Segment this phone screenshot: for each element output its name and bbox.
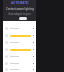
button[interactable] — [3, 67, 36, 72]
button[interactable] — [3, 25, 36, 32]
staticText: Context-aware lighting — [6, 7, 34, 11]
button[interactable] — [3, 39, 36, 46]
button[interactable] — [3, 46, 36, 53]
button[interactable] — [3, 53, 36, 60]
staticText: that adapts to you — [8, 12, 31, 16]
button[interactable] — [3, 32, 36, 39]
button[interactable]: Get started — [19, 17, 27, 20]
button[interactable] — [3, 60, 36, 67]
staticText: AUTOMATIC — [11, 1, 29, 5]
